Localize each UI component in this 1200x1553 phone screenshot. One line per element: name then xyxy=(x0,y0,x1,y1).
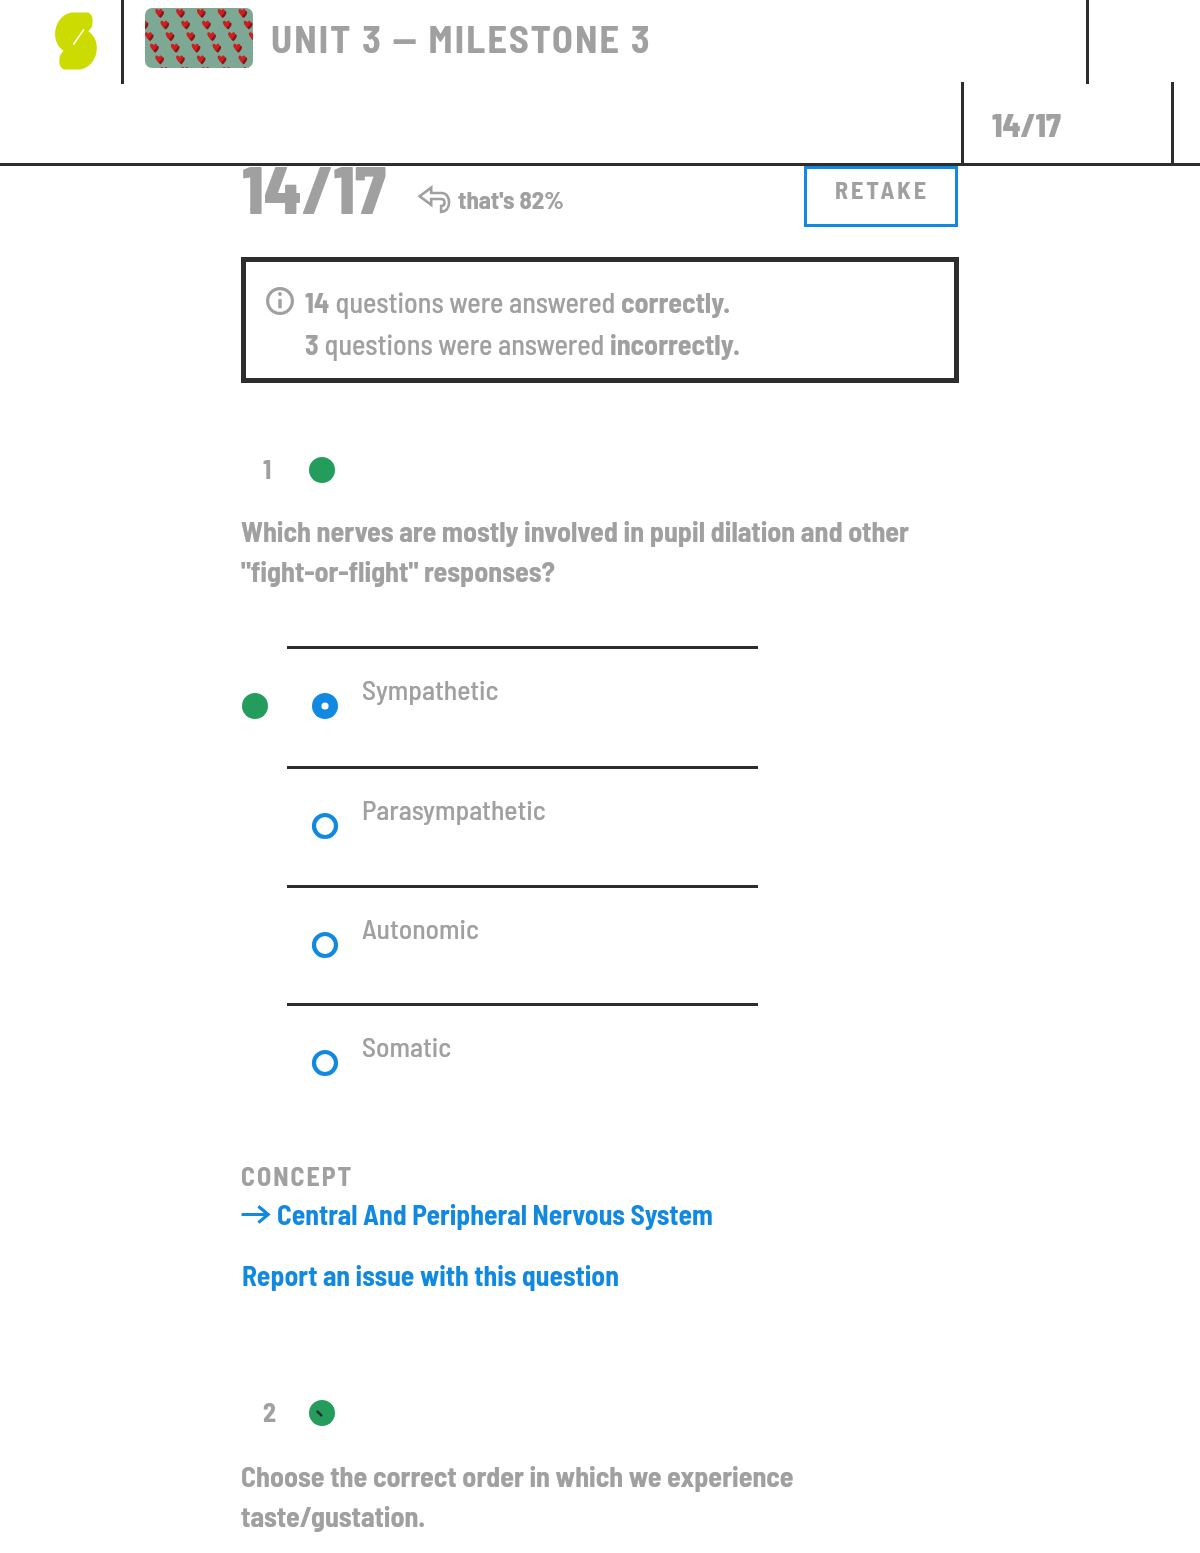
staticText: incorrectly. xyxy=(610,327,740,361)
staticText: Which nerves are mostly involved in pupi… xyxy=(241,514,909,588)
button[interactable]: Sophia home xyxy=(54,12,98,70)
staticText: questions were answered xyxy=(330,285,621,319)
staticText: CONCEPT xyxy=(241,1160,354,1191)
staticText: UNIT 3 — MILESTONE 3 xyxy=(271,15,652,61)
staticText: questions were answered xyxy=(319,327,610,361)
staticText: Parasympathetic xyxy=(362,792,546,825)
button[interactable]: Sympathetic xyxy=(0,646,1200,765)
button[interactable]: RETAKE xyxy=(804,166,958,227)
staticText: Sympathetic xyxy=(362,672,499,705)
button[interactable]: Report an issue with this question xyxy=(242,1258,619,1291)
staticText: Autonomic xyxy=(362,911,479,944)
button[interactable]: Parasympathetic xyxy=(0,766,1200,885)
staticText: 14/17 xyxy=(242,147,387,227)
staticText: 3 xyxy=(305,327,319,361)
staticText: 2 xyxy=(263,1396,276,1427)
button[interactable]: Central And Peripheral Nervous System xyxy=(241,1197,713,1230)
staticText: Somatic xyxy=(362,1029,452,1062)
staticText: correctly. xyxy=(621,285,731,319)
button[interactable]: Autonomic xyxy=(0,885,1200,1004)
button[interactable]: Somatic xyxy=(0,1003,1200,1122)
staticText: Central And Peripheral Nervous System xyxy=(277,1197,713,1230)
staticText: 14 xyxy=(305,285,330,319)
staticText: Choose the correct order in which we exp… xyxy=(241,1459,794,1533)
staticText: 14/17 xyxy=(992,105,1061,143)
staticText: RETAKE xyxy=(835,175,929,204)
staticText: that's 82% xyxy=(458,184,564,214)
staticText: 1 xyxy=(263,453,272,484)
